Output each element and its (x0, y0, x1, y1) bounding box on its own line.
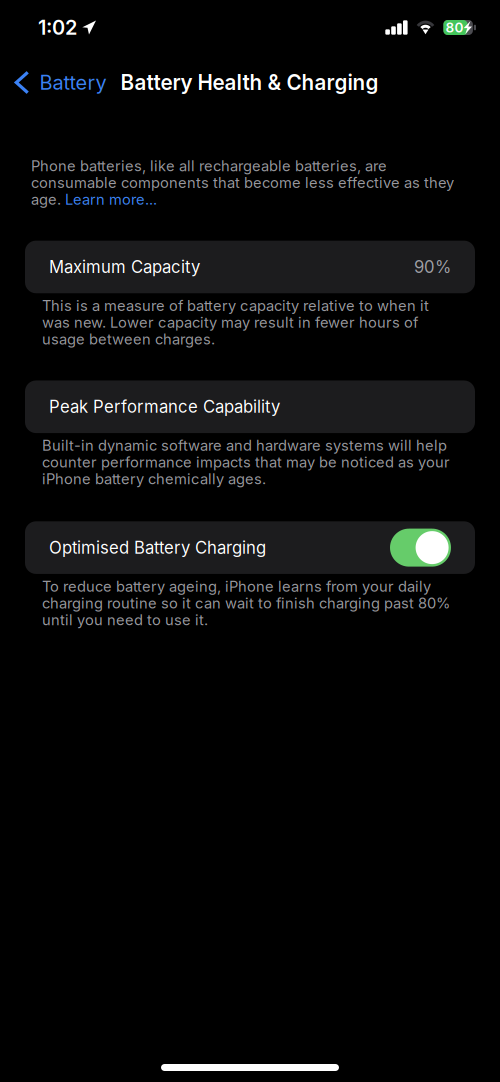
staticText: Built-in dynamic software and hardware s… (42, 437, 450, 488)
button[interactable]: Battery Health & Charging (120, 70, 378, 95)
staticText: This is a measure of battery capacity re… (42, 297, 429, 348)
button[interactable]: Optimised Battery Charging (25, 521, 475, 574)
staticText: Peak Performance Capability (49, 397, 280, 417)
staticText: Optimised Battery Charging (49, 537, 266, 558)
staticText: Battery (39, 70, 106, 95)
button[interactable]: Battery (0, 70, 120, 95)
staticText: 80 (445, 19, 463, 36)
button[interactable]: Learn more about battery health (25, 157, 459, 208)
button[interactable]: Peak Performance Capability (25, 380, 475, 433)
staticText: Battery Health & Charging (120, 70, 378, 95)
staticText: Phone batteries, like all rechargeable b… (31, 157, 454, 208)
staticText: To reduce battery ageing, iPhone learns … (42, 577, 450, 629)
staticText: 1:02 (38, 15, 77, 40)
staticText: Maximum Capacity (49, 257, 200, 277)
button[interactable]: Optimised Battery Charging, on (390, 529, 451, 567)
staticText: 90% (414, 257, 451, 277)
button[interactable]: Maximum Capacity (25, 241, 475, 293)
